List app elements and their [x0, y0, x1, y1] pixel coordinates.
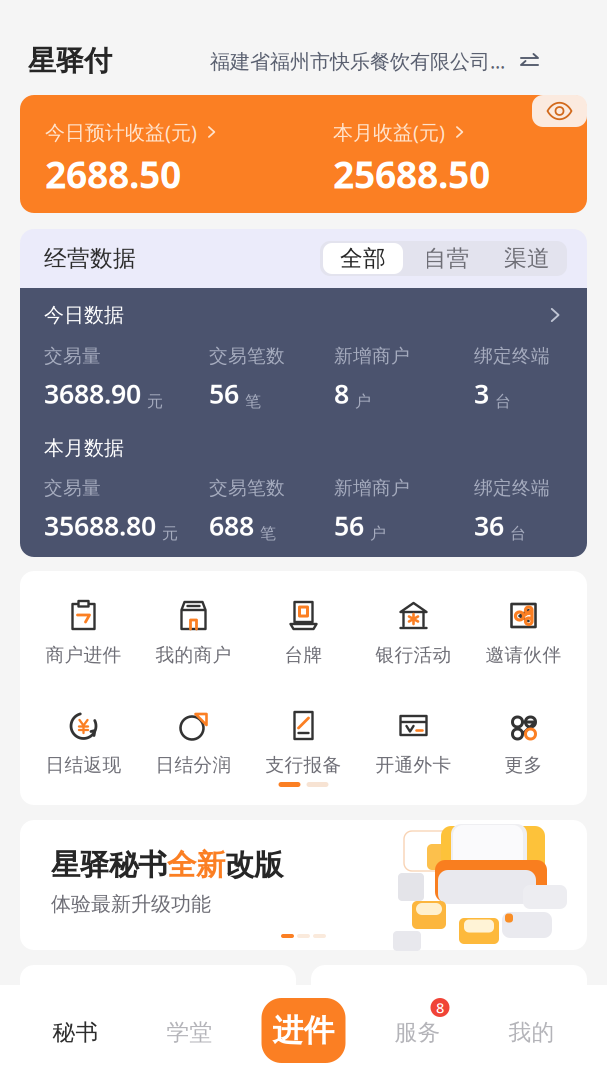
staticText: 银行活动 [375, 643, 451, 666]
staticText: 台 [495, 392, 511, 411]
staticText: 体验最新升级功能 [51, 892, 211, 916]
button[interactable]: 支行报备 [248, 708, 358, 776]
button[interactable]: 渠道 [487, 241, 567, 276]
staticText: 福建省福州市快乐餐饮有限公司... [210, 48, 505, 74]
staticText: 今日预计收益(元) [45, 119, 197, 145]
staticText: 绑定终端 [474, 344, 550, 367]
staticText: 经营数据 [44, 245, 136, 272]
staticText: 全新 [167, 847, 225, 883]
staticText: 本月数据 [44, 436, 124, 460]
button[interactable]: 今日数据 [44, 301, 563, 329]
button[interactable]: Toggle amount visibility [532, 95, 587, 127]
staticText: 3 [474, 376, 489, 411]
button[interactable]: 商户进件 [28, 598, 138, 666]
staticText: 交易量 [44, 344, 101, 367]
staticText: 绑定终端 [474, 476, 550, 499]
staticText: 新增商户 [334, 344, 410, 367]
staticText: 8 [334, 376, 349, 411]
staticText: 秘书 [52, 1019, 98, 1046]
staticText: 台牌 [284, 643, 322, 666]
staticText: 户 [370, 524, 386, 543]
button[interactable]: 进件 [261, 998, 345, 1063]
staticText: 渠道 [504, 245, 550, 272]
staticText: 56 [209, 376, 239, 411]
staticText: 我的商户 [155, 643, 231, 666]
staticText: 元 [147, 392, 163, 411]
staticText: 交易笔数 [209, 344, 285, 367]
staticText: 35688.80 [44, 508, 156, 543]
staticText: 全部 [340, 245, 386, 272]
button[interactable]: 银行活动 [358, 598, 468, 666]
staticText: 笔 [245, 392, 261, 411]
staticText: 进件 [272, 1012, 334, 1049]
staticText: 36 [474, 508, 504, 543]
button[interactable]: 全部 [320, 241, 406, 276]
staticText: 交易笔数 [209, 476, 285, 499]
button[interactable]: 自营 [406, 241, 487, 276]
button[interactable]: 我的 [474, 985, 588, 1080]
staticText: 25688.50 [333, 149, 490, 199]
staticText: 元 [162, 524, 178, 543]
staticText: 商户进件 [45, 643, 121, 666]
staticText: 8 [436, 998, 444, 1017]
staticText: 更多 [504, 753, 542, 776]
staticText: 户 [355, 392, 371, 411]
button[interactable]: 秘书 [18, 985, 132, 1080]
staticText: 688 [209, 508, 254, 543]
staticText: 服务 [394, 1019, 440, 1046]
button[interactable]: 台牌 [248, 598, 358, 666]
staticText: 今日数据 [44, 303, 124, 327]
staticText: 新增商户 [334, 476, 410, 499]
button[interactable]: 福建省福州市快乐餐饮有限公司... [210, 41, 540, 81]
staticText: 支行报备 [265, 753, 341, 776]
staticText: 星驿付 [28, 44, 112, 78]
staticText: 星驿秘书 [51, 847, 167, 883]
staticText: 台 [510, 524, 526, 543]
button[interactable]: 日结返现 [28, 708, 138, 776]
staticText: 交易量 [44, 476, 101, 499]
staticText: 3688.90 [44, 376, 141, 411]
staticText: 日结返现 [45, 753, 121, 776]
staticText: 日结分润 [155, 753, 231, 776]
button[interactable]: 我的商户 [138, 598, 248, 666]
button[interactable]: 日结分润 [138, 708, 248, 776]
staticText: 学堂 [166, 1019, 212, 1046]
button[interactable]: 开通外卡 [358, 708, 468, 776]
button[interactable]: 邀请伙伴 [468, 598, 578, 666]
staticText: 我的 [508, 1019, 554, 1046]
staticText: 改版 [225, 847, 283, 883]
staticText: 自营 [423, 245, 469, 272]
staticText: 56 [334, 508, 364, 543]
staticText: 笔 [260, 524, 276, 543]
staticText: 开通外卡 [375, 753, 451, 776]
staticText: 邀请伙伴 [485, 643, 561, 666]
button[interactable]: 学堂 [132, 985, 246, 1080]
button[interactable]: 星驿秘书 [20, 820, 587, 950]
button[interactable]: 服务 [360, 985, 474, 1080]
button[interactable]: 更多 [468, 708, 578, 776]
staticText: 2688.50 [45, 149, 181, 199]
staticText: 本月收益(元) [333, 119, 445, 145]
